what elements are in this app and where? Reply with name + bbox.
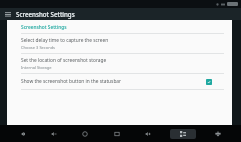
button[interactable]: Home [76,125,94,142]
staticText: Screenshot Settings [16,10,75,18]
button[interactable]: Screenshot [209,125,227,142]
button[interactable]: Menu [170,129,196,139]
staticText: Show the screenshot button in the status… [21,78,206,85]
staticText: Select delay time to capture the screen [21,37,109,44]
button[interactable]: Volume down [45,125,63,142]
button[interactable]: Recents [108,125,126,142]
button[interactable]: Navigation menu [0,8,16,20]
button[interactable]: Volume up [139,125,157,142]
staticText: Internal Storage [21,65,52,70]
button[interactable]: Back [14,125,32,142]
button[interactable]: Show the screenshot button in the status… [21,74,224,89]
button[interactable]: Select delay time to capture the screen [21,34,224,53]
staticText: Choose 3 Seconds [21,45,56,50]
button[interactable]: Set the location of screenshot storage [21,54,224,73]
staticText: Screenshot Settings [21,24,67,31]
staticText: Set the location of screenshot storage [21,57,107,64]
